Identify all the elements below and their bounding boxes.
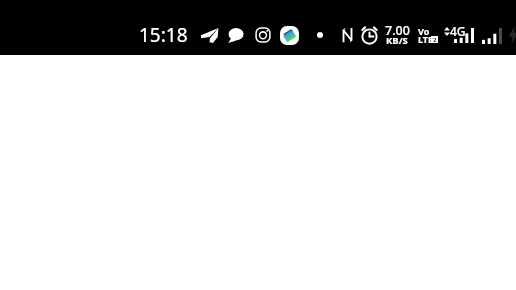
other: Status bar (0, 0, 516, 55)
button[interactable]: 15:18 (139, 22, 188, 48)
other: More notifications (317, 32, 323, 38)
other: Instagram notification (255, 27, 271, 43)
other: SIM 2 signal three bars (482, 28, 502, 44)
other: App notification (280, 26, 299, 45)
staticText: KB/S (386, 34, 408, 47)
staticText: 2 (433, 36, 437, 43)
staticText: 7.00 (385, 22, 410, 39)
staticText: Vo (418, 25, 430, 37)
other: Message notification (228, 27, 244, 43)
other: NFC enabled (341, 27, 354, 43)
other: Telegram notification (200, 27, 219, 43)
other: Alarm set (361, 26, 378, 44)
other: Battery charging (508, 26, 516, 44)
other: SIM 1 signal full (454, 28, 474, 43)
other: Mobile data activity (444, 27, 450, 36)
staticText: 4G (450, 23, 466, 39)
staticText: LTE (418, 33, 434, 45)
other: Content area (0, 0, 516, 290)
